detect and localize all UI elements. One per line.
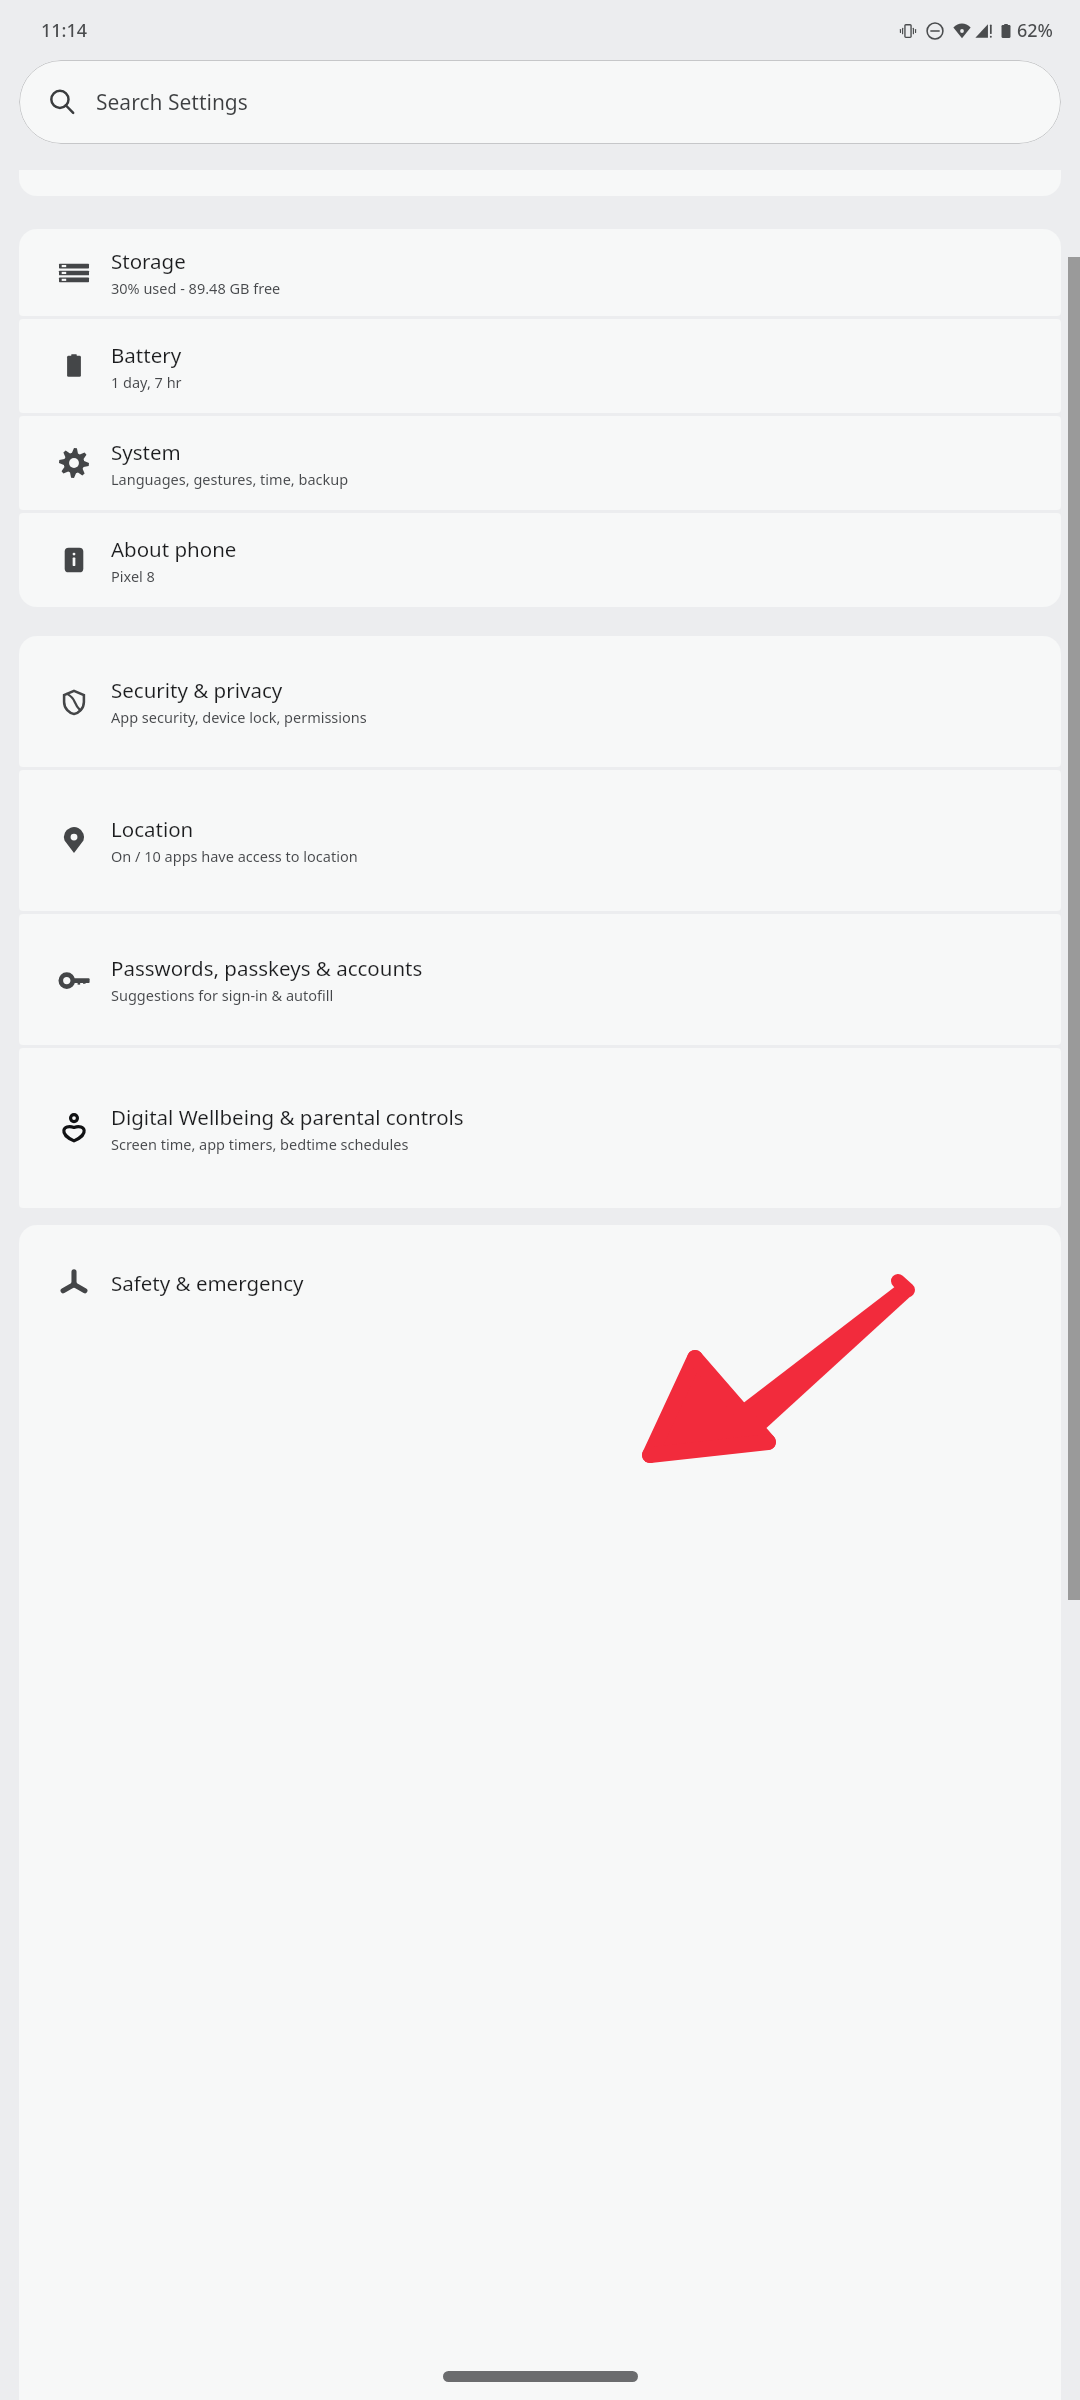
staticText: Digital Wellbeing & parental controls	[111, 1103, 464, 1131]
button[interactable]: Storage	[19, 229, 1061, 316]
button[interactable]: Passwords, passkeys & accounts	[19, 914, 1061, 1045]
staticText: 1 day, 7 hr	[111, 372, 182, 392]
staticText: 30% used - 89.48 GB free	[111, 278, 281, 298]
button[interactable]: Location	[19, 770, 1061, 911]
staticText: Battery	[111, 341, 182, 369]
button[interactable]: Security & privacy	[19, 636, 1061, 767]
button[interactable]: System	[19, 416, 1061, 510]
staticText: Storage	[111, 247, 186, 275]
staticText: App security, device lock, permissions	[111, 707, 367, 727]
staticText: Search Settings	[96, 88, 248, 117]
staticText: On / 10 apps have access to location	[111, 846, 358, 866]
staticText: About phone	[111, 535, 237, 563]
button[interactable]: Safety & emergency	[19, 1225, 1061, 2400]
staticText: Passwords, passkeys & accounts	[111, 954, 423, 982]
button[interactable]: About phone	[19, 513, 1061, 607]
staticText: Security & privacy	[111, 676, 283, 704]
staticText: System	[111, 438, 181, 466]
button[interactable]: Digital Wellbeing & parental controls	[19, 1048, 1061, 1208]
button[interactable]: Battery	[19, 319, 1061, 413]
staticText: Suggestions for sign-in & autofill	[111, 985, 334, 1005]
staticText: Pixel 8	[111, 566, 155, 586]
staticText: Safety & emergency	[111, 1269, 304, 1297]
staticText: Languages, gestures, time, backup	[111, 469, 349, 489]
staticText: 62%	[1017, 18, 1053, 43]
staticText: Location	[111, 815, 194, 843]
staticText: 11:14	[41, 18, 88, 43]
staticText: Screen time, app timers, bedtime schedul…	[111, 1134, 409, 1154]
button[interactable]: Search Settings	[19, 60, 1061, 144]
